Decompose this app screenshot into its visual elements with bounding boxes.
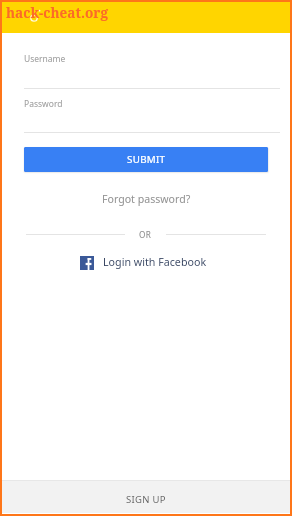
button[interactable]: SIGN UP bbox=[2, 480, 290, 513]
staticText: Login with Facebook bbox=[103, 255, 207, 270]
staticText: OR bbox=[139, 229, 152, 239]
staticText: Password bbox=[24, 98, 63, 110]
staticText: Username bbox=[24, 53, 66, 65]
staticText: hack-cheat.org bbox=[6, 3, 108, 22]
staticText: SIGN UP bbox=[126, 493, 166, 506]
button[interactable]: SUBMIT bbox=[24, 147, 268, 172]
button[interactable]: Login with Facebook bbox=[80, 255, 207, 270]
button[interactable]: Forgot password? bbox=[102, 192, 191, 206]
staticText: SUBMIT bbox=[127, 153, 166, 166]
